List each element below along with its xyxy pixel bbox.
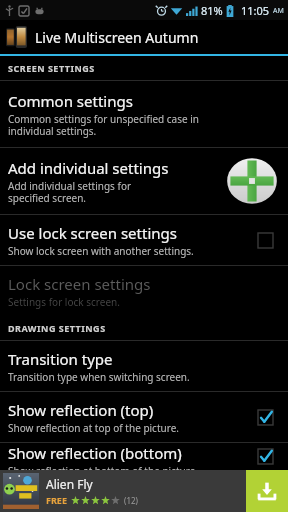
staticText: AM — [273, 6, 284, 16]
staticText: Add individual settings — [8, 158, 169, 178]
button: Lock screen settings — [0, 266, 288, 316]
staticText: DRAWING SETTINGS — [8, 322, 106, 334]
staticText: Show reflection at top of the picture. — [8, 421, 179, 435]
staticText: Lock screen settings — [8, 274, 151, 294]
button[interactable]: Install Alien Fly — [246, 470, 288, 512]
button[interactable]: Show reflection (bottom) — [0, 443, 288, 470]
staticText: Common settings for unspecified case in … — [8, 112, 199, 138]
button[interactable]: Transition type — [0, 341, 288, 391]
staticText: Transition type — [8, 349, 113, 369]
staticText: Show lock screen with another settings. — [8, 244, 194, 258]
staticText: Add individual settings for specified sc… — [8, 179, 132, 205]
staticText: Common settings — [8, 91, 133, 111]
staticText: FREE — [46, 494, 67, 506]
button[interactable]: Alien Fly — [0, 470, 288, 512]
staticText: 11:05 — [241, 3, 270, 18]
staticText: 81% — [201, 3, 223, 18]
button[interactable]: Show reflection (top) — [0, 392, 288, 442]
button[interactable]: Use lock screen settings — [0, 215, 288, 265]
button[interactable]: Add individual settings — [0, 148, 288, 214]
button[interactable]: Checked — [250, 402, 280, 432]
staticText: Show reflection at bottom of the picture… — [8, 464, 198, 470]
button[interactable]: Live Multiscreen Autumn — [0, 20, 288, 54]
staticText: Use lock screen settings — [8, 223, 177, 243]
button[interactable]: Unchecked — [250, 225, 280, 255]
staticText: (12) — [124, 495, 138, 506]
button[interactable]: Common settings — [0, 81, 288, 147]
staticText: Live Multiscreen Autumn — [35, 28, 199, 47]
staticText: SCREEN SETTINGS — [8, 62, 95, 74]
staticText: Transition type when switching screen. — [8, 370, 190, 384]
staticText: Settings for lock screen. — [8, 295, 120, 309]
button[interactable]: Checked — [250, 443, 280, 470]
button[interactable]: Add individual settings — [224, 153, 280, 209]
staticText: Show reflection (top) — [8, 400, 154, 420]
staticText: Show reflection (bottom) — [8, 443, 182, 463]
staticText: Alien Fly — [46, 476, 93, 492]
